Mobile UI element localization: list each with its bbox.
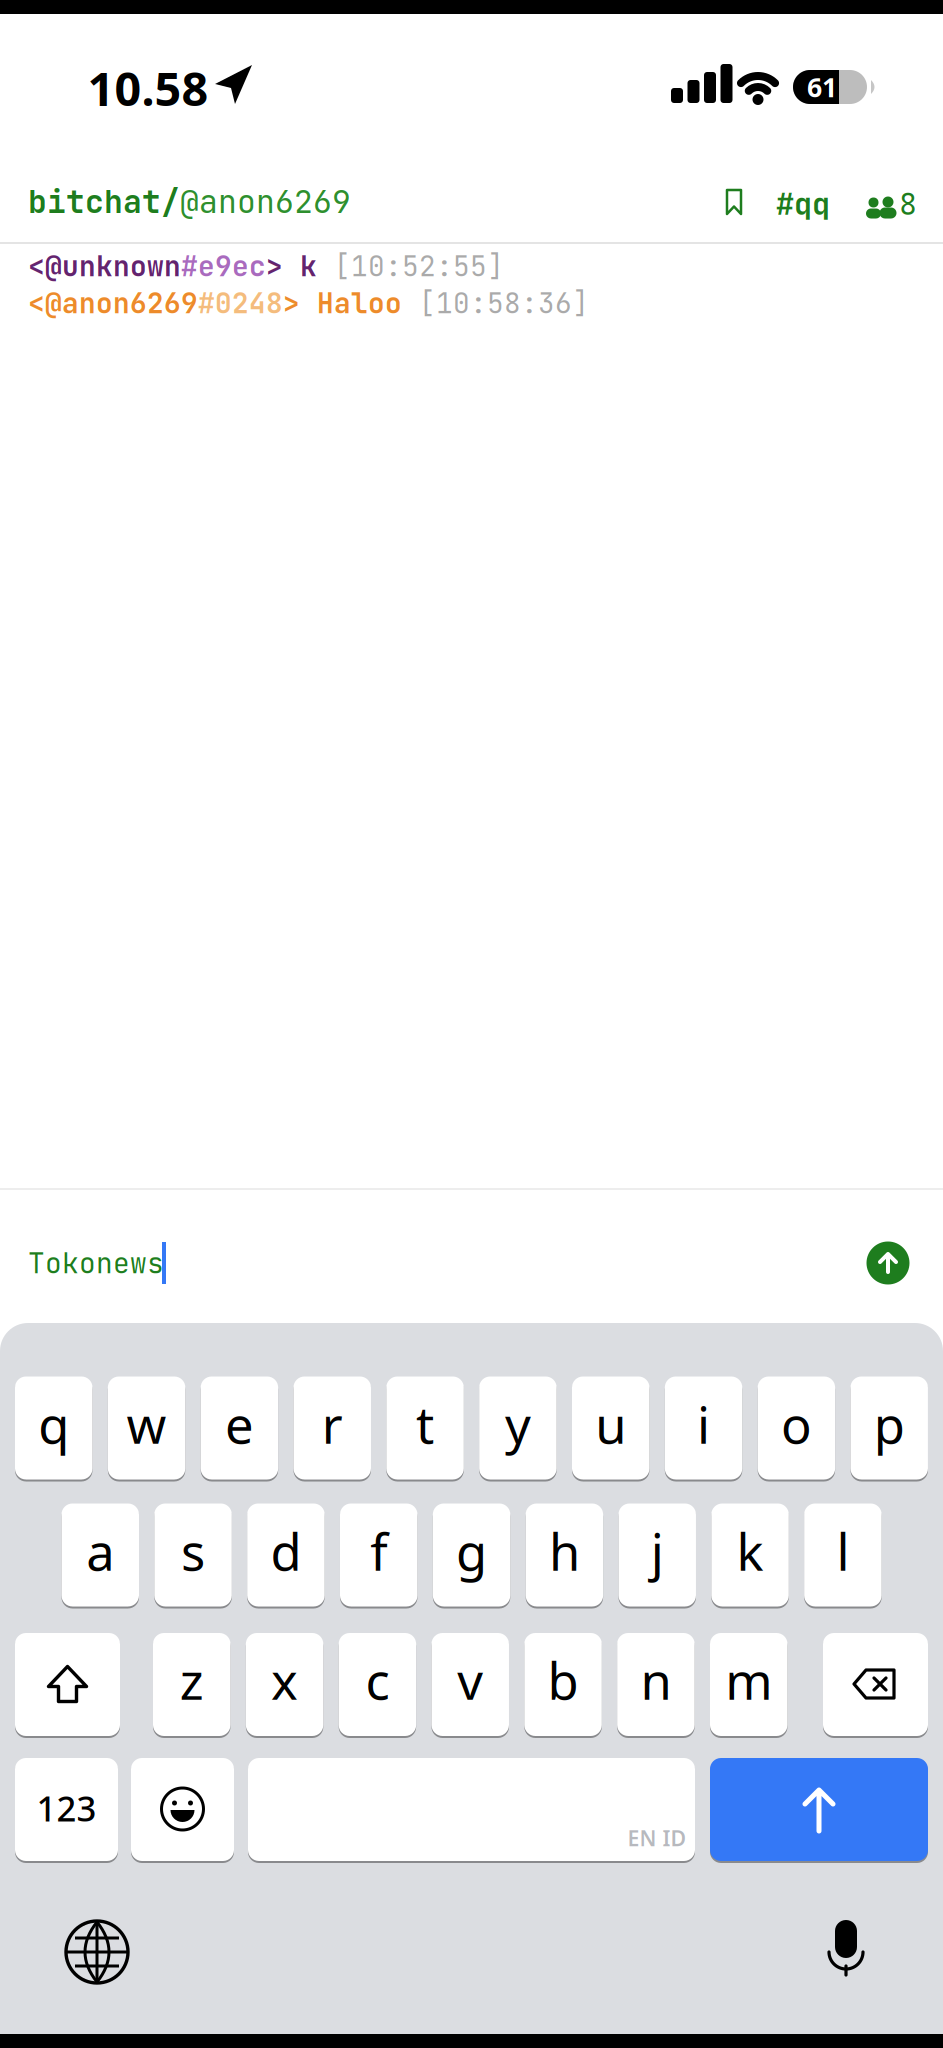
staticText: > xyxy=(283,285,317,322)
staticText: 8 xyxy=(899,184,917,224)
staticText: l xyxy=(836,1517,849,1585)
staticText: b xyxy=(548,1646,579,1714)
staticText: e xyxy=(225,1390,254,1458)
staticText: d xyxy=(270,1517,301,1585)
staticText: 10.58 xyxy=(87,57,208,119)
staticText: 61 xyxy=(807,69,837,105)
staticText: <@anon6269 xyxy=(28,285,198,322)
staticText: x xyxy=(271,1646,298,1714)
staticText: a xyxy=(86,1517,114,1585)
staticText: EN ID xyxy=(627,1824,686,1852)
staticText: k xyxy=(737,1517,764,1585)
staticText: v xyxy=(457,1646,483,1714)
staticText: #e9ec xyxy=(181,248,266,285)
staticText: g xyxy=(456,1517,487,1585)
staticText: r xyxy=(322,1390,343,1458)
staticText: s xyxy=(181,1517,205,1585)
staticText: k xyxy=(300,248,334,285)
staticText: j xyxy=(651,1517,664,1585)
staticText: z xyxy=(180,1646,204,1714)
staticText: y xyxy=(505,1390,531,1458)
staticText: #0248 xyxy=(198,285,283,322)
staticText: q xyxy=(38,1390,69,1458)
staticText: c xyxy=(365,1646,389,1714)
staticText: o xyxy=(781,1390,812,1458)
staticText: @anon6269 xyxy=(180,181,351,222)
staticText: i xyxy=(697,1390,710,1458)
staticText: f xyxy=(370,1517,387,1585)
staticText: [10:58:36] xyxy=(419,285,589,322)
staticText: <@unknown xyxy=(28,248,181,285)
staticText: m xyxy=(725,1646,772,1714)
staticText: 123 xyxy=(36,1785,96,1831)
staticText: t xyxy=(416,1390,434,1458)
staticText: Haloo xyxy=(317,285,419,322)
staticText: Tokonews xyxy=(28,1245,164,1282)
staticText: n xyxy=(640,1646,671,1714)
staticText: > xyxy=(266,248,300,285)
staticText: u xyxy=(595,1390,626,1458)
staticText: [10:52:55] xyxy=(334,248,504,285)
staticText: w xyxy=(127,1390,167,1458)
staticText: bitchat/ xyxy=(28,181,180,222)
staticText: h xyxy=(549,1517,580,1585)
staticText: p xyxy=(874,1390,905,1458)
staticText: #qq xyxy=(776,184,830,224)
